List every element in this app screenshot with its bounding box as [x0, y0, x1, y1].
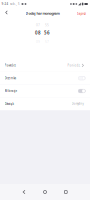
staticText: Dźwięk	[4, 102, 13, 106]
staticText: 55	[45, 23, 49, 27]
button[interactable]: Home	[39, 184, 51, 200]
button[interactable]: Back	[1, 8, 11, 19]
staticText: Poniedz.	[67, 64, 80, 67]
staticText: Dodaj harmonogram	[25, 11, 59, 16]
staticText: Domyślny	[71, 102, 83, 106]
button[interactable]: Back	[18, 184, 30, 200]
button[interactable]: Recent apps	[60, 184, 72, 200]
staticText: 09	[36, 40, 40, 44]
button[interactable]: Drzemka	[0, 72, 90, 85]
staticText: sob., 5	[10, 2, 20, 6]
staticText: 08	[35, 30, 41, 36]
staticText: 57	[45, 40, 49, 44]
staticText: 9:24	[2, 2, 9, 6]
staticText: 07	[36, 23, 40, 27]
staticText: Wibracje	[4, 89, 17, 93]
button[interactable]: Zapisz	[74, 8, 87, 19]
staticText: 56	[44, 30, 50, 36]
button[interactable]: Powtórz	[0, 59, 90, 72]
staticText: Powtórz	[4, 63, 15, 67]
button[interactable]: Wibracje	[0, 85, 90, 97]
button[interactable]: Dźwięk	[0, 97, 90, 110]
staticText: Drzemka	[4, 76, 16, 80]
staticText: Zapisz	[76, 11, 85, 16]
